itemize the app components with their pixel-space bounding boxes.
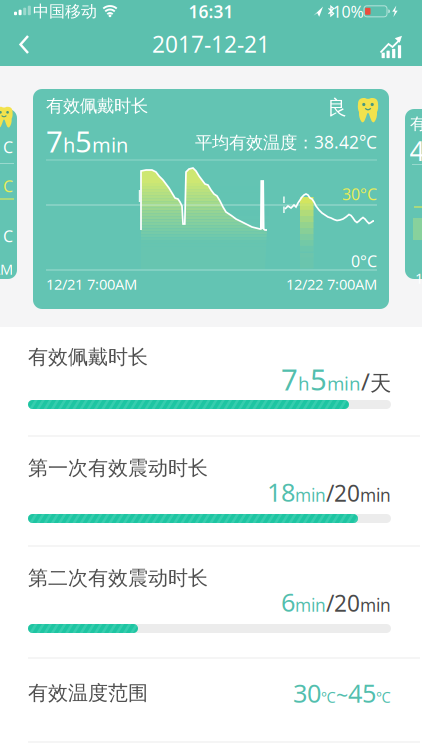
button[interactable]: Statistics	[378, 29, 406, 61]
staticText: 良	[327, 95, 347, 120]
button[interactable]: 有效佩戴时长详情	[33, 89, 389, 309]
staticText: C	[3, 225, 13, 247]
button[interactable]: Back	[3, 27, 47, 62]
staticText: 有效温度范围	[28, 681, 148, 705]
staticText: 10%	[332, 1, 363, 22]
staticText: C	[3, 175, 13, 197]
staticText: 7h5min	[281, 359, 361, 398]
staticText: C	[3, 136, 13, 158]
staticText: 第一次有效震动时长	[28, 456, 208, 480]
staticText: 中国移动	[33, 2, 97, 21]
staticText: /20min	[326, 478, 391, 508]
staticText: 16:31	[188, 0, 233, 23]
staticText: 2017-12-21	[152, 29, 270, 59]
staticText: 12/22 7:00AM	[286, 274, 377, 294]
staticText: 有	[410, 114, 422, 134]
staticText: AM	[0, 259, 13, 279]
staticText: 18min	[267, 475, 326, 509]
staticText: 30°C	[342, 183, 377, 205]
staticText: /天	[361, 365, 391, 397]
staticText: 6min	[281, 585, 326, 619]
staticText: 第二次有效震动时长	[28, 566, 208, 590]
staticText: 有效佩戴时长	[46, 95, 148, 117]
staticText: 1	[415, 268, 422, 288]
staticText: 0°C	[351, 250, 377, 272]
staticText: 12/21 7:00AM	[46, 274, 137, 294]
staticText: 30℃~45℃	[293, 676, 391, 710]
staticText: 平均有效温度：38.42°C	[195, 130, 377, 153]
staticText: /20min	[326, 588, 391, 618]
staticText: 7h5min	[46, 121, 128, 160]
staticText: 4	[409, 133, 422, 169]
staticText: 有效佩戴时长	[28, 345, 148, 369]
